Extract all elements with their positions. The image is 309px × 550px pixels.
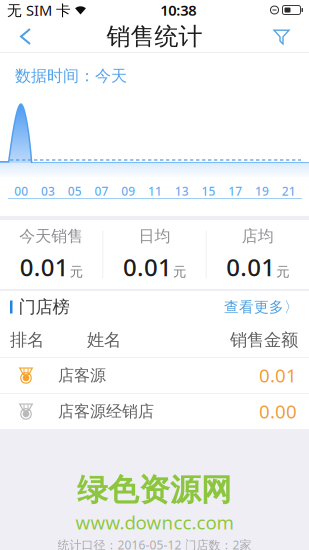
button[interactable]: 店客源经销店 <box>0 393 309 429</box>
staticText: 元 <box>70 263 83 280</box>
staticText: 店客源 <box>58 365 106 385</box>
staticText: 绿色资源网 <box>77 471 232 509</box>
staticText: 店客源经销店 <box>58 401 154 421</box>
staticText: 0.01 <box>259 363 297 388</box>
staticText: 查看更多〉 <box>224 298 299 316</box>
staticText: www.downcc.com <box>75 510 233 535</box>
staticText: 00 <box>14 183 28 199</box>
staticText: 03 <box>41 183 55 199</box>
staticText: 07 <box>94 183 108 199</box>
staticText: 11 <box>148 183 162 199</box>
staticText: 0.01 <box>20 251 69 283</box>
staticText: 0.00 <box>259 399 297 424</box>
staticText: 姓名 <box>87 329 121 351</box>
staticText: 10:38 <box>160 0 196 20</box>
staticText: 05 <box>68 183 82 199</box>
staticText: 门店榜 <box>18 296 69 318</box>
staticText: 今天销售 <box>19 226 83 246</box>
staticText: 21 <box>282 183 296 199</box>
staticText: 数据时间：今天 <box>15 66 127 86</box>
staticText: 09 <box>121 183 135 199</box>
staticText: 元 <box>173 263 186 280</box>
button[interactable]: Filter <box>250 20 309 53</box>
staticText: 统计口径：2016-05-12 门店数：2家 <box>57 537 251 550</box>
staticText: 13 <box>175 183 189 199</box>
staticText: 15 <box>201 183 215 199</box>
staticText: 日均 <box>138 226 170 246</box>
staticText: 17 <box>228 183 242 199</box>
staticText: 19 <box>255 183 269 199</box>
button[interactable]: 查看更多〉 <box>224 292 309 322</box>
staticText: 店均 <box>242 226 274 246</box>
staticText: 销售统计 <box>106 22 202 51</box>
staticText: 排名 <box>10 329 44 351</box>
staticText: 无 SIM 卡 <box>7 0 71 20</box>
button[interactable]: Back <box>0 20 54 53</box>
staticText: 元 <box>276 263 289 280</box>
button[interactable]: 店客源 <box>0 357 309 393</box>
staticText: 0.01 <box>226 251 275 283</box>
staticText: 0.01 <box>123 251 172 283</box>
staticText: 销售金额 <box>230 329 298 351</box>
